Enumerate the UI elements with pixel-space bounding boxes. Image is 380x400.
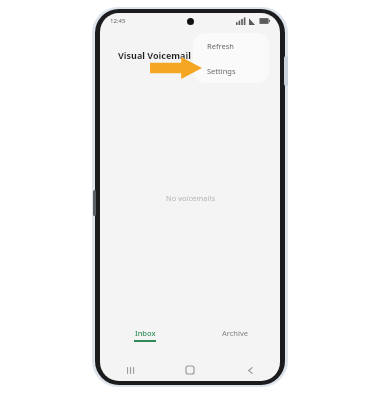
staticText: Visual Voicemail bbox=[118, 49, 191, 61]
button[interactable]: Home bbox=[160, 359, 220, 381]
staticText: Refresh bbox=[207, 41, 234, 51]
button[interactable]: Archive bbox=[190, 325, 280, 345]
button[interactable]: Back bbox=[220, 359, 280, 381]
staticText: No voicemails bbox=[166, 193, 215, 203]
staticText: 12:45 bbox=[110, 17, 126, 25]
staticText: Archive bbox=[222, 328, 248, 338]
staticText: Settings bbox=[207, 66, 236, 76]
button[interactable]: Settings bbox=[193, 58, 269, 83]
button[interactable]: Refresh bbox=[193, 33, 269, 58]
staticText: Inbox bbox=[135, 328, 156, 338]
button[interactable]: Recents bbox=[100, 359, 160, 381]
button[interactable]: Inbox bbox=[100, 325, 190, 345]
